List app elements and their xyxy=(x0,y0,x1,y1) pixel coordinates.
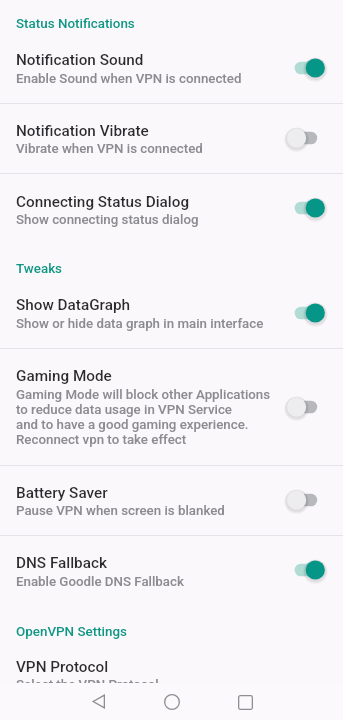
staticText: Connecting Status Dialog xyxy=(16,193,190,211)
button[interactable]: Back xyxy=(74,677,122,720)
staticText: VPN Protocol xyxy=(16,658,109,676)
staticText: Status Notifications xyxy=(16,16,135,32)
staticText: Gaming Mode will block other Application… xyxy=(16,387,271,447)
button[interactable]: Disabled xyxy=(284,124,328,152)
staticText: Show connecting status dialog xyxy=(16,212,199,228)
staticText: DNS Fallback xyxy=(16,554,107,572)
button[interactable] xyxy=(0,643,343,683)
staticText: Show or hide data graph in main interfac… xyxy=(16,316,264,332)
staticText: Notification Sound xyxy=(16,51,144,69)
staticText: Enable Goodle DNS Fallback xyxy=(16,574,184,590)
button[interactable] xyxy=(0,536,343,603)
button[interactable]: Home xyxy=(148,678,196,720)
button[interactable]: Enabled xyxy=(284,54,328,82)
button[interactable]: Enabled xyxy=(284,194,328,222)
button[interactable]: Enabled xyxy=(284,299,328,327)
button[interactable] xyxy=(0,281,343,348)
button[interactable]: Enabled xyxy=(284,556,328,584)
staticText: Select the VPN Protocol xyxy=(16,677,159,693)
button[interactable] xyxy=(0,104,343,173)
staticText: Vibrate when VPN is connected xyxy=(16,141,203,157)
staticText: OpenVPN Settings xyxy=(16,624,127,640)
button[interactable] xyxy=(0,174,343,241)
button[interactable]: Disabled xyxy=(284,486,328,514)
button[interactable]: Disabled xyxy=(284,393,328,421)
button[interactable] xyxy=(0,349,343,465)
staticText: Pause VPN when screen is blanked xyxy=(16,503,225,519)
button[interactable]: Recent apps xyxy=(221,678,269,720)
button[interactable] xyxy=(0,466,343,535)
staticText: Tweaks xyxy=(16,261,63,277)
staticText: Show DataGraph xyxy=(16,296,131,314)
staticText: Notification Vibrate xyxy=(16,122,149,140)
staticText: Battery Saver xyxy=(16,484,108,502)
staticText: Gaming Mode xyxy=(16,367,112,385)
button[interactable] xyxy=(0,36,343,103)
staticText: Enable Sound when VPN is connected xyxy=(16,71,242,87)
